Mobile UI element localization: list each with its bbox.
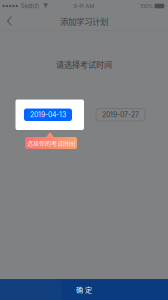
button[interactable]: Back [0, 12, 19, 30]
staticText: 9:41 AM [73, 3, 94, 9]
staticText: Sketch [21, 2, 40, 10]
button[interactable]: 2019-04-13 [24, 108, 72, 121]
staticText: 选择你的考试时间 [27, 139, 75, 147]
staticText: 100% [140, 3, 153, 9]
button[interactable]: 2019-07-27 [96, 108, 145, 121]
staticText: 请选择考试时间 [56, 58, 112, 70]
staticText: 2019-04-13 [30, 111, 66, 119]
staticText: 2019-07-27 [102, 111, 139, 119]
staticText: 确 定 [76, 284, 92, 295]
button[interactable]: 确 定 [0, 279, 168, 300]
staticText: 添加学习计划 [60, 15, 108, 27]
